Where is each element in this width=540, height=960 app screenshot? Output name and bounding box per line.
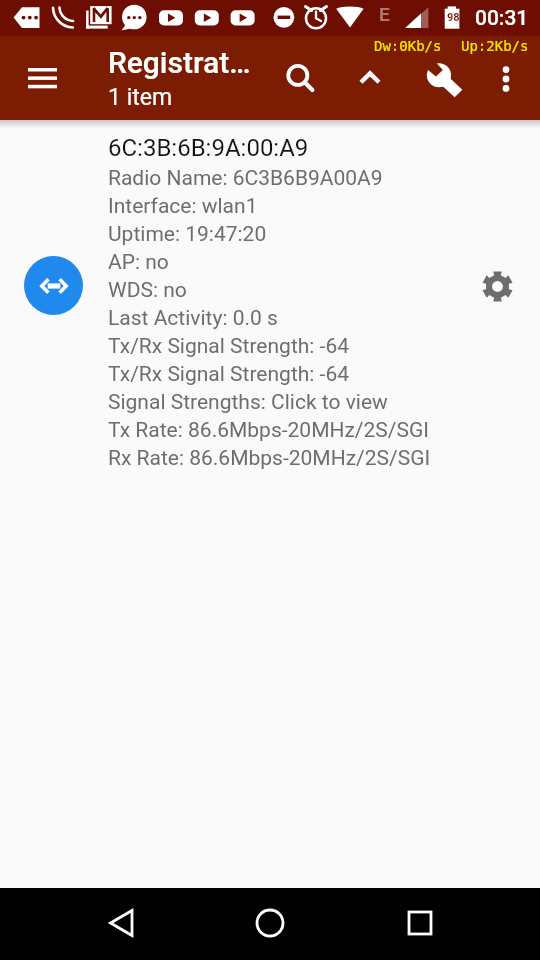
button[interactable]: Back — [91, 893, 151, 953]
button[interactable]: More options — [482, 55, 530, 103]
staticText: Up:2Kb/s — [461, 38, 529, 54]
button[interactable]: Open navigation drawer — [0, 36, 84, 120]
staticText: Dw:0Kb/s — [374, 38, 442, 54]
staticText: 00:31 — [475, 6, 529, 31]
button[interactable]: Settings — [473, 262, 521, 310]
button[interactable]: Toggle connection — [0, 120, 540, 888]
staticText: 6C:3B:6B:9A:00:A9 — [108, 134, 309, 162]
staticText: Registrat… — [108, 45, 251, 80]
staticText: Radio Name: 6C3B6B9A00A9 Interface: wlan… — [108, 166, 431, 470]
button[interactable]: Recent apps — [390, 893, 450, 953]
button[interactable]: Home — [240, 893, 300, 953]
button[interactable]: Tools — [420, 55, 468, 103]
staticText: 1 item — [108, 84, 173, 111]
button[interactable]: Collapse — [346, 55, 394, 103]
staticText: E — [379, 3, 390, 25]
button[interactable]: Toggle connection — [24, 256, 83, 315]
button[interactable]: Search — [276, 55, 324, 103]
staticText: 98 — [447, 11, 460, 24]
